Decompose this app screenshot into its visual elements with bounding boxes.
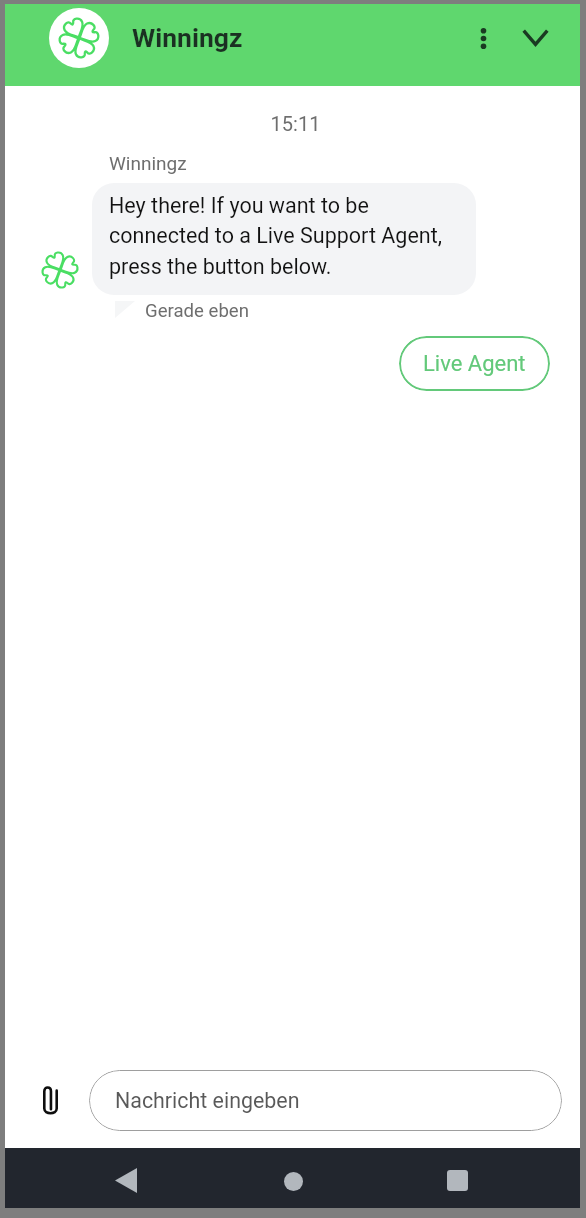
staticText: Nachricht eingeben xyxy=(115,1088,300,1113)
button[interactable]: Collapse xyxy=(511,13,559,61)
staticText: Winningz xyxy=(109,152,187,174)
button[interactable]: More options xyxy=(459,14,507,62)
staticText: Hey there! If you want to be connected t… xyxy=(109,193,442,279)
button[interactable]: Attach file xyxy=(26,1076,74,1124)
button[interactable]: Nachricht eingeben xyxy=(89,1070,562,1131)
button[interactable]: Recents xyxy=(429,1153,485,1208)
button[interactable]: Home xyxy=(265,1154,321,1208)
staticText: Gerade eben xyxy=(145,300,249,322)
staticText: Winningz xyxy=(132,22,243,53)
staticText: 15:11 xyxy=(11,112,580,135)
button[interactable]: Live Agent xyxy=(399,336,550,391)
button[interactable]: Back xyxy=(98,1152,154,1208)
staticText: Live Agent xyxy=(423,351,526,377)
